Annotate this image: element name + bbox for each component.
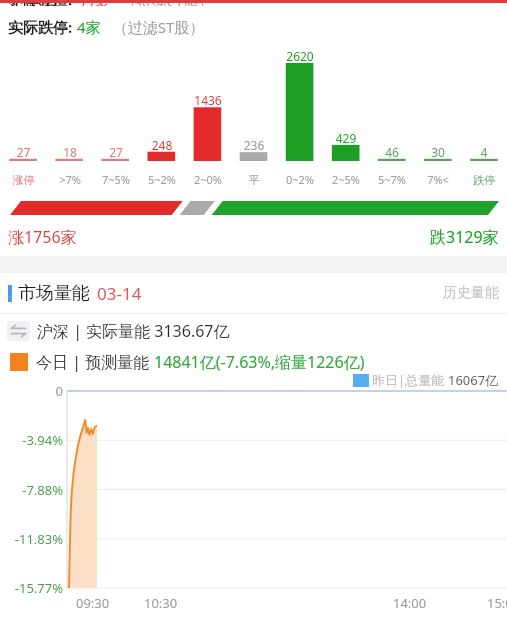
staticText: 7%< <box>415 172 461 187</box>
staticText: 昨日|总量能 <box>372 371 448 389</box>
staticText: 2620 <box>277 48 323 64</box>
staticText: >7% <box>47 172 93 187</box>
staticText: 03-14 <box>97 282 142 305</box>
staticText: 5~2% <box>139 172 185 187</box>
staticText: 历史量能 <box>443 284 499 302</box>
staticText: -15.77% <box>0 579 63 597</box>
staticText: 15:00 <box>487 594 507 612</box>
staticText: 4 <box>461 144 507 160</box>
staticText: （过滤ST股） <box>110 3 214 6</box>
staticText: -7.88% <box>0 481 63 499</box>
staticText: 429 <box>323 130 369 146</box>
staticText: （过滤ST股） <box>101 17 205 37</box>
staticText: 涨1756家 <box>8 226 77 248</box>
staticText: 248 <box>139 137 185 153</box>
staticText: -11.83% <box>0 530 63 548</box>
staticText: 平 <box>231 173 277 187</box>
button[interactable]: Switch market <box>7 321 30 341</box>
staticText: 5~7% <box>369 172 415 187</box>
button[interactable]: 市场量能 <box>0 273 507 313</box>
staticText: 实际涨停: <box>8 3 77 6</box>
staticText: 236 <box>231 137 277 153</box>
staticText: 14:00 <box>393 594 427 612</box>
staticText: 1436 <box>185 92 231 108</box>
staticText: 0~2% <box>277 172 323 187</box>
staticText: 18 <box>47 144 93 160</box>
staticText: 今日 | 预测量能 <box>36 351 154 373</box>
staticText: 09:30 <box>76 594 110 612</box>
staticText: 涨停 <box>0 173 47 187</box>
staticText: 2~0% <box>185 172 231 187</box>
staticText: 市场量能 <box>18 282 90 305</box>
staticText: 27 <box>0 144 47 160</box>
staticText: 10:30 <box>144 594 178 612</box>
staticText: 16067亿 <box>448 371 499 389</box>
staticText: 4家 <box>77 17 101 37</box>
staticText: 46 <box>369 144 415 160</box>
staticText: 7~5% <box>93 172 139 187</box>
staticText: 14841亿(-7.63%,缩量1226亿) <box>154 351 365 373</box>
staticText: 实际跌停: <box>8 17 77 37</box>
staticText: 沪深 | 实际量能 3136.67亿 <box>37 320 230 342</box>
staticText: 22家 <box>77 3 110 6</box>
staticText: 2~5% <box>323 172 369 187</box>
staticText: 30 <box>415 144 461 160</box>
staticText: -3.94% <box>0 431 63 449</box>
staticText: 0 <box>0 382 63 400</box>
staticText: 27 <box>93 144 139 160</box>
staticText: 跌停 <box>461 173 507 187</box>
staticText: 跌3129家 <box>430 226 499 248</box>
